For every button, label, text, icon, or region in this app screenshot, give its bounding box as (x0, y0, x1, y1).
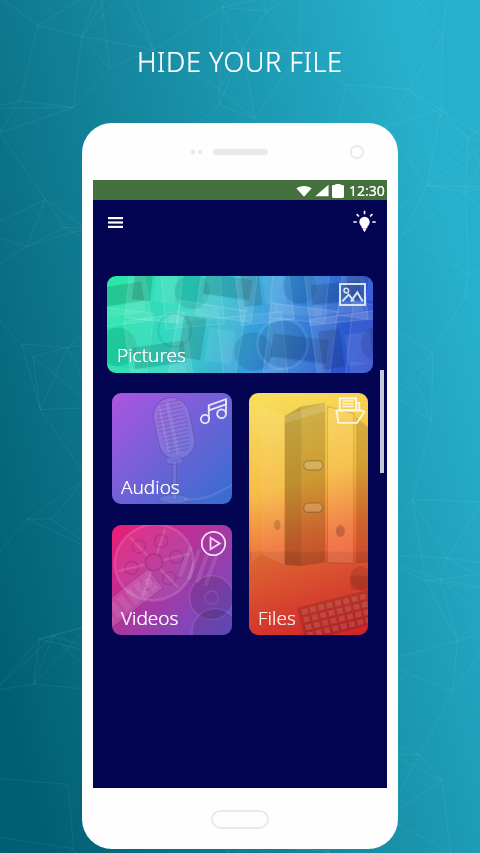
staticText: 12:30 (349, 181, 385, 200)
button[interactable]: Audios (112, 393, 232, 504)
staticText: Pictures (117, 342, 186, 368)
button[interactable]: Pictures (107, 276, 373, 373)
button[interactable]: Menu (98, 205, 132, 239)
button[interactable]: Videos (112, 525, 232, 635)
staticText: HIDE YOUR FILE (137, 43, 343, 80)
button[interactable]: Tips (347, 205, 381, 239)
staticText: Videos (121, 605, 179, 631)
staticText: Files (258, 605, 296, 631)
button[interactable]: Files (249, 393, 368, 635)
staticText: Audios (121, 474, 180, 500)
button[interactable]: Home (211, 810, 269, 829)
